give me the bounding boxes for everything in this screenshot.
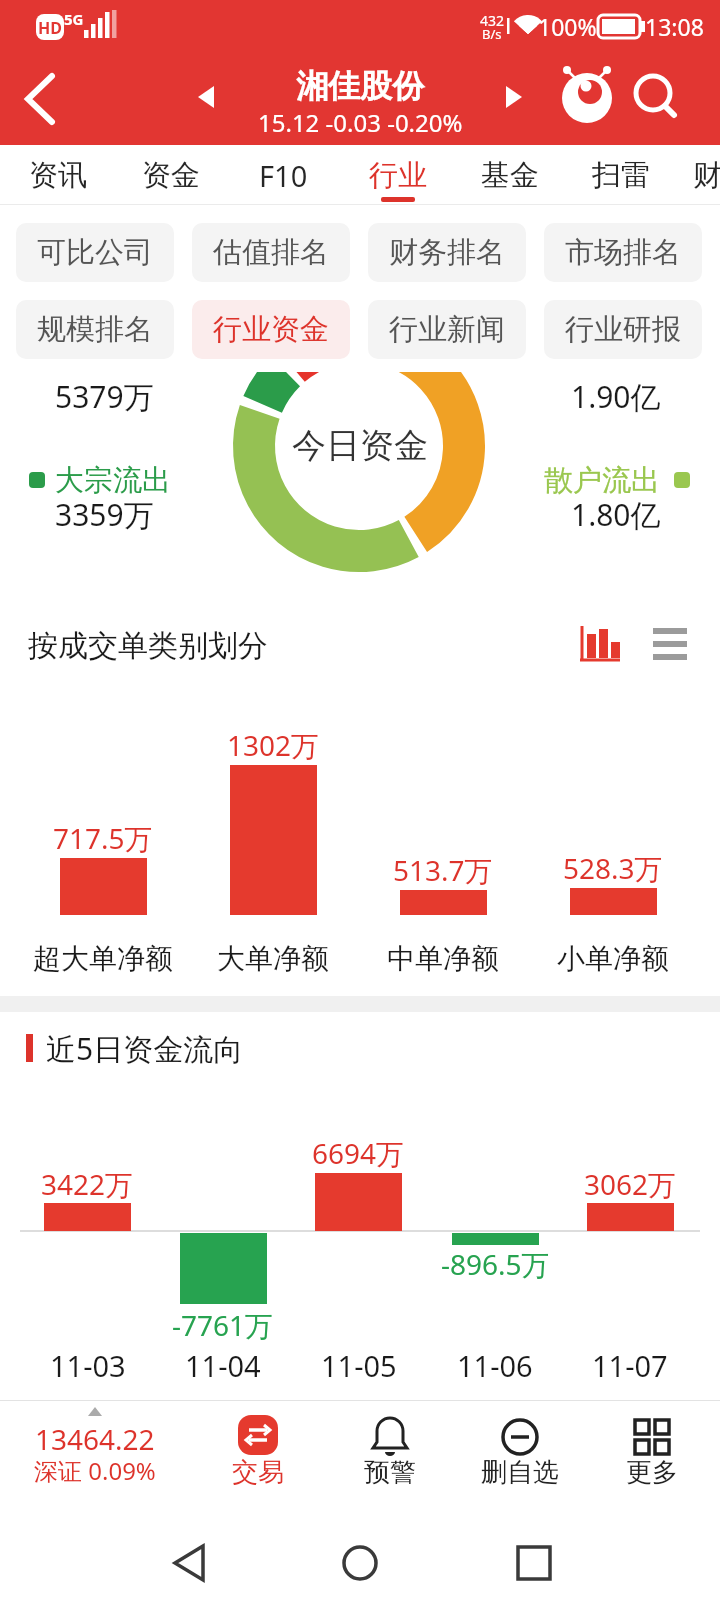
button[interactable]: 行业新闻 bbox=[368, 300, 526, 359]
staticText: 删自选 bbox=[481, 1456, 559, 1489]
staticText: 3422万 bbox=[41, 1165, 134, 1203]
staticText: 预警 bbox=[364, 1456, 416, 1489]
staticText: 财 bbox=[693, 157, 720, 194]
staticText: 散户流出 bbox=[544, 462, 660, 499]
staticText: 432 bbox=[480, 11, 505, 30]
button[interactable]: 可比公司 bbox=[16, 223, 174, 282]
staticText: 估值排名 bbox=[213, 234, 329, 271]
staticText: 湘佳股份 bbox=[296, 66, 424, 106]
staticText: F10 bbox=[259, 156, 308, 195]
staticText: 近5日资金流向 bbox=[46, 1028, 244, 1069]
staticText: 更多 bbox=[626, 1456, 678, 1489]
staticText: 11-07 bbox=[592, 1346, 668, 1385]
staticText: 基金 bbox=[481, 157, 539, 194]
staticText: 中单净额 bbox=[387, 941, 499, 976]
staticText: 大单净额 bbox=[217, 941, 329, 976]
staticText: 1302万 bbox=[227, 726, 320, 764]
button[interactable]: 规模排名 bbox=[16, 300, 174, 359]
staticText: 11-03 bbox=[50, 1346, 126, 1385]
staticText: 6694万 bbox=[312, 1134, 405, 1172]
staticText: 行业新闻 bbox=[389, 311, 505, 348]
staticText: 5G bbox=[64, 9, 84, 29]
staticText: 3062万 bbox=[584, 1165, 677, 1203]
staticText: 超大单净额 bbox=[33, 941, 173, 976]
staticText: 513.7万 bbox=[393, 851, 493, 889]
staticText: 财务排名 bbox=[389, 234, 505, 271]
button[interactable]: 市场排名 bbox=[544, 223, 702, 282]
staticText: 小单净额 bbox=[557, 941, 669, 976]
staticText: 市场排名 bbox=[565, 234, 681, 271]
staticText: 528.3万 bbox=[563, 849, 663, 887]
staticText: 可比公司 bbox=[37, 234, 153, 271]
staticText: 13464.22 bbox=[35, 1420, 155, 1458]
button[interactable]: 财务排名 bbox=[368, 223, 526, 282]
staticText: 规模排名 bbox=[37, 311, 153, 348]
button[interactable] bbox=[217, 1403, 297, 1498]
staticText: 11-06 bbox=[457, 1346, 533, 1385]
button[interactable]: 估值排名 bbox=[192, 223, 350, 282]
button[interactable]: 财 bbox=[652, 148, 720, 202]
staticText: 行业 bbox=[369, 157, 427, 194]
staticText: 1.90亿 bbox=[571, 376, 661, 417]
staticText: 大宗流出 bbox=[55, 462, 171, 499]
staticText: 11-05 bbox=[321, 1346, 397, 1385]
button[interactable]: 扫雷 bbox=[566, 148, 676, 202]
staticText: 资讯 bbox=[29, 157, 87, 194]
staticText: 深证 0.09% bbox=[34, 1454, 156, 1487]
staticText: 1.80亿 bbox=[571, 494, 661, 535]
staticText: HD bbox=[38, 17, 62, 39]
button[interactable]: 行业研报 bbox=[544, 300, 702, 359]
button[interactable]: 资金 bbox=[116, 148, 226, 202]
staticText: 5379万 bbox=[55, 376, 154, 417]
staticText: 资金 bbox=[142, 157, 200, 194]
button[interactable]: F10 bbox=[228, 148, 338, 202]
button[interactable] bbox=[612, 1403, 692, 1498]
staticText: 今日资金 bbox=[292, 424, 428, 467]
staticText: 717.5万 bbox=[53, 819, 153, 857]
button[interactable]: 行业资金 bbox=[192, 300, 350, 359]
staticText: 行业资金 bbox=[213, 311, 329, 348]
staticText: 15.12 -0.03 -0.20% bbox=[258, 106, 463, 139]
staticText: 3359万 bbox=[55, 494, 154, 535]
staticText: 100% bbox=[538, 11, 597, 42]
staticText: 按成交单类别划分 bbox=[28, 627, 268, 665]
button[interactable]: 资讯 bbox=[3, 148, 113, 202]
button[interactable]: 基金 bbox=[455, 148, 565, 202]
button[interactable] bbox=[350, 1403, 430, 1498]
staticText: 11-04 bbox=[185, 1346, 261, 1385]
button[interactable] bbox=[20, 1403, 180, 1498]
staticText: 13:08 bbox=[645, 11, 704, 42]
staticText: -896.5万 bbox=[441, 1245, 550, 1283]
staticText: 行业研报 bbox=[565, 311, 681, 348]
button[interactable]: 行业 bbox=[343, 148, 453, 202]
staticText: B/s bbox=[482, 25, 502, 43]
staticText: 交易 bbox=[232, 1456, 284, 1489]
staticText: 扫雷 bbox=[592, 157, 650, 194]
button[interactable] bbox=[480, 1403, 560, 1498]
staticText: -7761万 bbox=[172, 1306, 274, 1344]
